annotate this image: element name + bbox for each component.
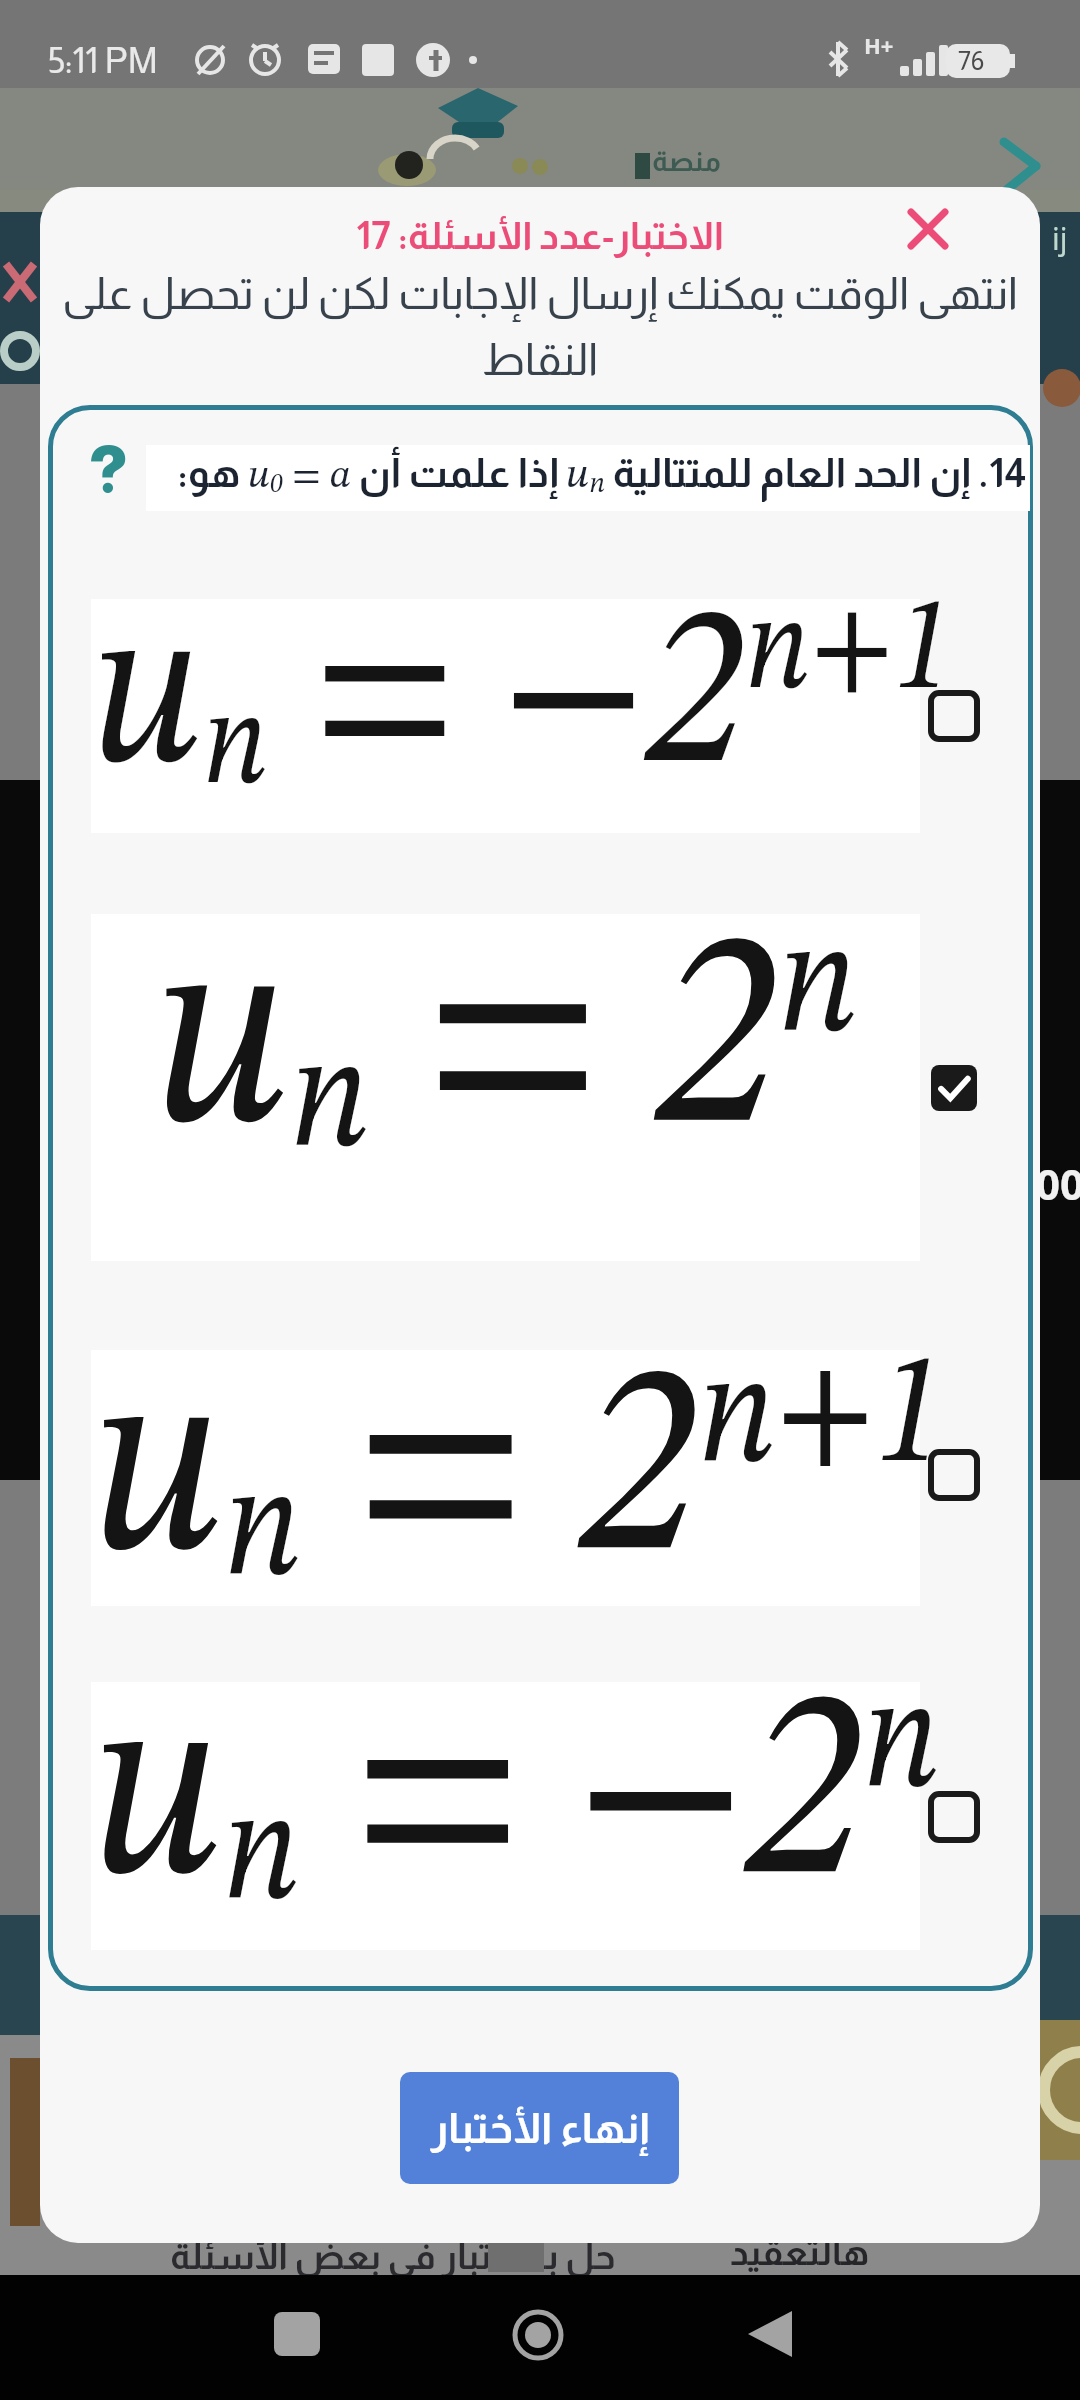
staticText: un = −2n bbox=[91, 1664, 920, 1936]
button[interactable] bbox=[931, 1065, 977, 1111]
staticText: الاختبار-عدد الأسئلة: 17 bbox=[40, 215, 1040, 257]
staticText: هالتعقيد bbox=[730, 2232, 870, 2272]
button[interactable]: un = 2n+1 bbox=[91, 1350, 920, 1606]
staticText: ij bbox=[1052, 218, 1068, 259]
button[interactable] bbox=[512, 2309, 564, 2361]
button[interactable] bbox=[931, 1794, 977, 1840]
button[interactable] bbox=[931, 1452, 977, 1498]
staticText: انتهى الوقت يمكنك إرسال الإجابات لكن لن … bbox=[40, 269, 1040, 384]
staticText: 00 bbox=[1036, 1155, 1080, 1212]
staticText: un = 2n bbox=[153, 905, 858, 1186]
button[interactable] bbox=[931, 693, 977, 739]
button[interactable] bbox=[748, 2311, 794, 2357]
staticText: حل بالاختبار في بعض الأسئلة bbox=[170, 2236, 616, 2276]
staticText: 5:11 PM bbox=[48, 40, 158, 80]
button[interactable]: un = 2n bbox=[91, 914, 920, 1261]
staticText: un = 2n+1 bbox=[91, 1339, 920, 1613]
staticText: 76 bbox=[958, 46, 985, 75]
button[interactable]: un = −2n bbox=[91, 1682, 920, 1950]
staticText: إنهاء الأختبار bbox=[430, 2105, 649, 2152]
staticText: H+ bbox=[864, 30, 894, 60]
button[interactable]: إنهاء الأختبار bbox=[400, 2072, 679, 2184]
staticText: 14. إن الحد العام للمتتالية un إذا علمت … bbox=[156, 451, 1026, 499]
button[interactable]: un = −2n+1 bbox=[91, 599, 920, 833]
button[interactable] bbox=[274, 2312, 320, 2356]
button[interactable] bbox=[885, 199, 970, 259]
staticText: منصة bbox=[652, 146, 721, 177]
staticText: ? bbox=[88, 433, 128, 507]
staticText: un = −2n+1 bbox=[91, 585, 920, 815]
